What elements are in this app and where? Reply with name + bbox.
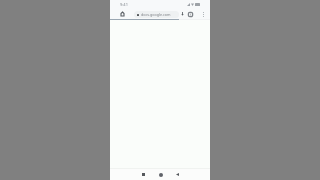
button[interactable]: Home — [155, 169, 166, 180]
button[interactable]: Switch tabs — [185, 9, 196, 19]
button[interactable]: Recent apps — [138, 169, 149, 180]
button[interactable]: Download — [179, 9, 185, 19]
button[interactable]: More options — [196, 9, 210, 19]
button[interactable]: Home — [110, 9, 134, 19]
button[interactable]: docs.google.com — [134, 11, 179, 18]
button[interactable]: Back — [172, 169, 183, 180]
staticText: docs.google.com — [141, 12, 171, 17]
staticText: 9:41 — [120, 2, 128, 7]
